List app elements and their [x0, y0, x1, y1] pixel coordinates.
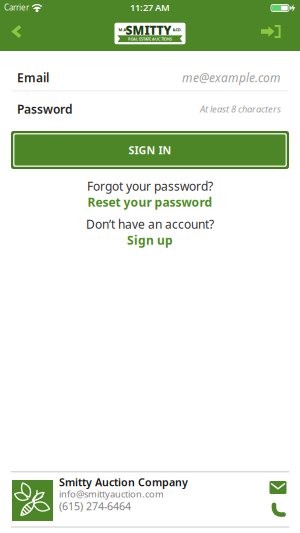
staticText: (615) 274-6464: [59, 499, 131, 513]
staticText: &CO.: [172, 27, 181, 32]
button[interactable]: Email: [269, 481, 286, 494]
staticText: Don’t have an account?: [86, 216, 214, 232]
button[interactable]: SIGN IN: [11, 131, 289, 169]
staticText: Sign up: [127, 232, 173, 248]
button[interactable]: Sign up: [127, 232, 173, 248]
button[interactable]: Sign in: [261, 25, 281, 38]
button[interactable]: Call: [270, 501, 287, 518]
button[interactable]: Back: [11, 25, 22, 38]
staticText: REAL ESTATE AUCTIONS: [128, 36, 172, 41]
button[interactable]: Smitty Auction Company: [114, 23, 185, 44]
staticText: Password: [17, 101, 73, 117]
staticText: Reset your password: [87, 194, 212, 210]
staticText: Smitty Auction Company: [59, 475, 188, 489]
staticText: Forgot your password?: [87, 178, 213, 194]
staticText: M.A.: [118, 27, 127, 32]
staticText: me@example.com: [182, 69, 281, 85]
staticText: Email: [17, 69, 49, 85]
button[interactable]: Reset your password: [87, 194, 212, 210]
staticText: SMITTY: [125, 22, 171, 38]
staticText: 11:27 AM: [130, 1, 170, 14]
staticText: SIGN IN: [128, 143, 171, 157]
button[interactable]: Email: [17, 66, 281, 88]
button[interactable]: Password: [17, 98, 281, 120]
staticText: At least 8 characters: [200, 103, 281, 115]
staticText: info@smittyauction.com: [59, 488, 164, 500]
staticText: Carrier: [4, 2, 29, 13]
